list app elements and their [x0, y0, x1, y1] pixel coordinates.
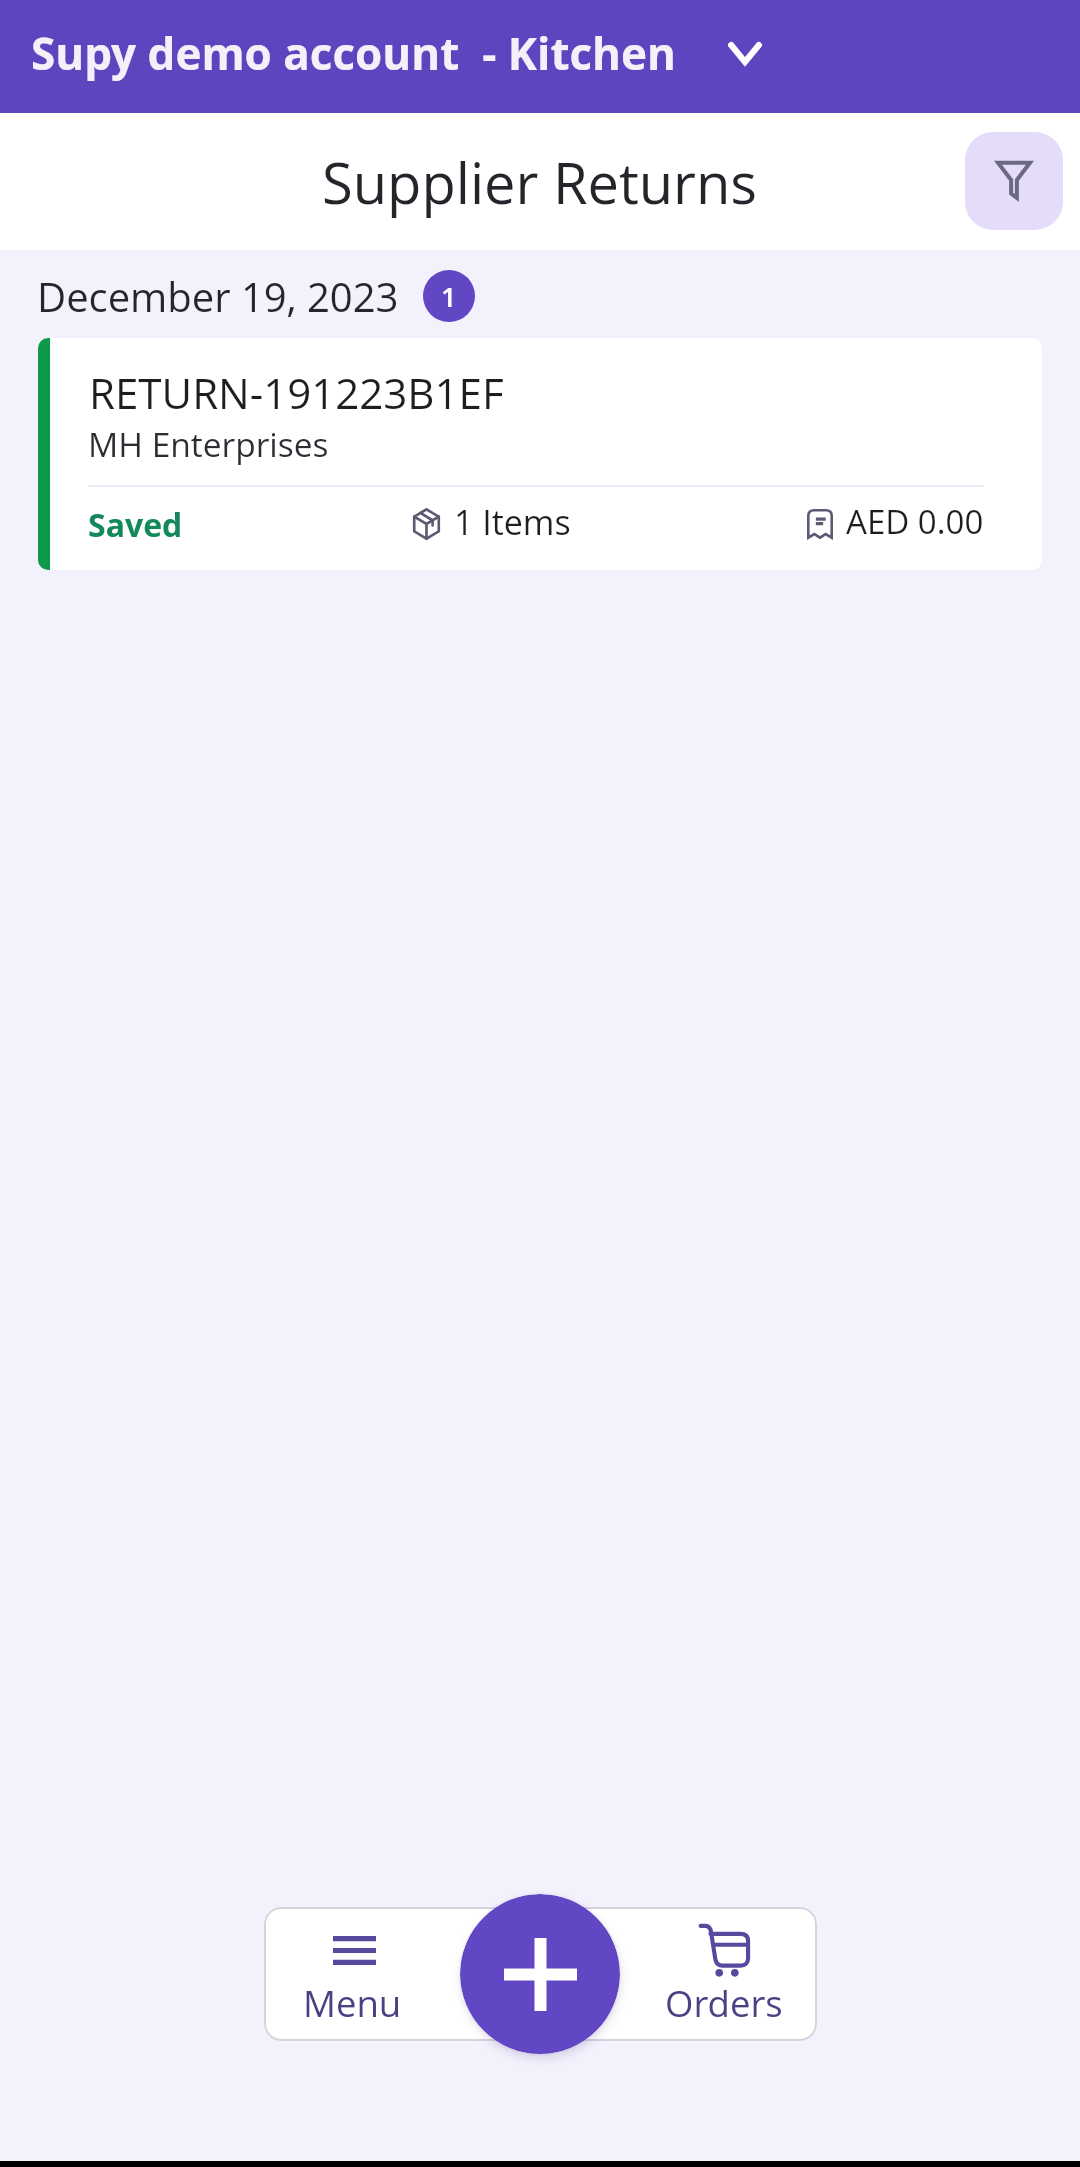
- staticText: MH Enterprises: [88, 421, 329, 467]
- button[interactable]: RETURN-191223B1EF: [38, 338, 1042, 570]
- button[interactable]: Supy demo account - Kitchen: [0, 0, 1080, 113]
- staticText: December 19, 2023: [37, 269, 399, 323]
- button[interactable]: Filter: [965, 132, 1063, 230]
- staticText: Saved: [88, 503, 183, 547]
- staticText: Orders: [665, 1978, 783, 2028]
- staticText: Menu: [303, 1978, 402, 2028]
- button[interactable]: Menu: [266, 1907, 471, 2041]
- staticText: 1: [441, 278, 457, 315]
- staticText: Supy demo account - Kitchen: [31, 23, 676, 83]
- button[interactable]: Orders: [641, 1907, 817, 2041]
- button[interactable]: Add: [460, 1894, 620, 2054]
- staticText: RETURN-191223B1EF: [89, 364, 504, 421]
- button[interactable]: Switch branch: [712, 26, 777, 80]
- staticText: AED 0.00: [846, 499, 984, 544]
- staticText: Supplier Returns: [322, 144, 758, 220]
- staticText: 1 Items: [454, 499, 571, 545]
